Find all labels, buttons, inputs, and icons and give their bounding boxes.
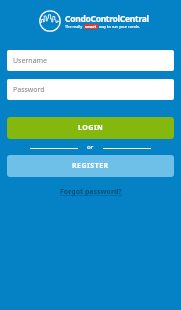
staticText: smart: [85, 24, 97, 29]
staticText: Password: [13, 85, 45, 95]
button[interactable]: Forgot password?: [60, 187, 122, 197]
staticText: Username: [13, 56, 48, 66]
staticText: CondoControlCentral: [65, 13, 149, 25]
staticText: LOGIN: [78, 123, 104, 133]
button[interactable]: REGISTER: [7, 155, 174, 177]
button[interactable]: LOGIN: [7, 117, 174, 139]
staticText: Forgot password?: [60, 187, 122, 197]
button[interactable]: Username: [7, 50, 174, 71]
staticText: The really: [65, 24, 84, 29]
button[interactable]: Password: [7, 79, 174, 100]
staticText: or: [87, 143, 94, 151]
staticText: way to run your condo.: [98, 24, 141, 29]
staticText: REGISTER: [72, 161, 109, 171]
